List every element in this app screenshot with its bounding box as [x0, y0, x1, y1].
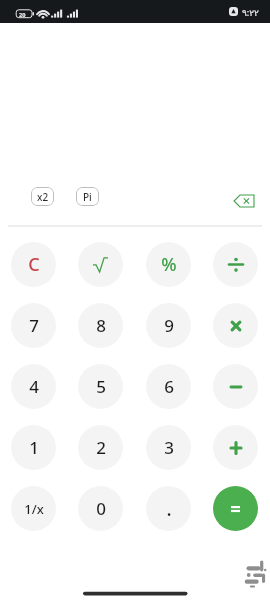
button[interactable]: 7: [11, 303, 56, 348]
button[interactable]: 9: [146, 303, 191, 348]
staticText: 1: [29, 436, 39, 459]
button[interactable]: %: [146, 242, 191, 287]
staticText: Pi: [83, 190, 92, 204]
button[interactable]: 5: [78, 364, 123, 409]
staticText: 0: [96, 497, 106, 520]
staticText: x2: [37, 190, 49, 204]
button[interactable]: 2: [78, 425, 123, 470]
staticText: 6: [164, 375, 174, 398]
button[interactable]: Plus: [213, 425, 258, 470]
staticText: %: [161, 252, 177, 277]
other: Equals: [231, 505, 240, 512]
button[interactable]: .: [146, 486, 191, 531]
button[interactable]: 1: [11, 425, 56, 470]
staticText: 5: [96, 375, 106, 398]
other: Square root: [93, 257, 108, 272]
button[interactable]: Minus: [213, 364, 258, 409]
button[interactable]: Pi: [76, 187, 99, 206]
staticText: 7: [29, 314, 39, 337]
button[interactable]: 0: [78, 486, 123, 531]
button[interactable]: 1/x: [11, 486, 56, 531]
button[interactable]: C: [11, 242, 56, 287]
staticText: C: [28, 252, 40, 277]
button[interactable]: 6: [146, 364, 191, 409]
other: Bazaar: [244, 559, 266, 586]
button[interactable]: Backspace: [232, 192, 255, 209]
button[interactable]: 8: [78, 303, 123, 348]
staticText: ۹:۲۲: [242, 6, 259, 18]
staticText: 4: [29, 375, 39, 398]
staticText: 1/x: [24, 500, 44, 518]
other: Plus: [230, 442, 242, 454]
button[interactable]: 3: [146, 425, 191, 470]
other: Multiply: [230, 320, 242, 332]
button[interactable]: Divide: [213, 242, 258, 287]
button[interactable]: 4: [11, 364, 56, 409]
staticText: 20: [19, 11, 26, 19]
staticText: 9: [164, 314, 174, 337]
staticText: 3: [164, 436, 174, 459]
other: Minus: [230, 381, 242, 393]
button[interactable]: Multiply: [213, 303, 258, 348]
button[interactable]: Equals: [213, 486, 258, 531]
other: Divide: [229, 258, 243, 271]
staticText: 8: [96, 314, 106, 337]
staticText: 2: [96, 436, 106, 459]
staticText: .: [166, 496, 172, 522]
button[interactable]: Square root: [78, 242, 123, 287]
button[interactable]: x2: [31, 187, 54, 206]
